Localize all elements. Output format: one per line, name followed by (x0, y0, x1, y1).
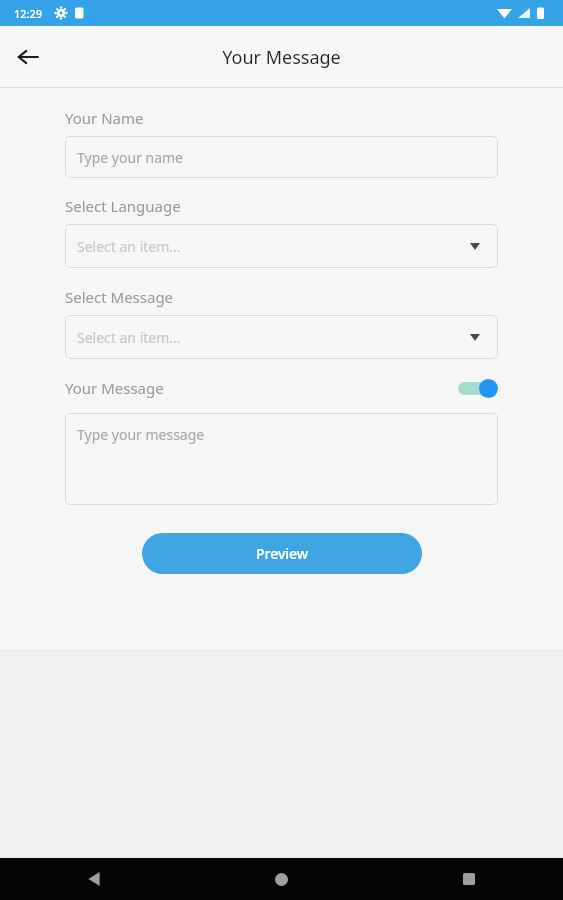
staticText: Type your name (77, 148, 183, 167)
staticText: 12:29 (14, 6, 43, 21)
staticText: Your Name (65, 108, 144, 128)
button[interactable]: Type your name (65, 136, 498, 178)
staticText: Select Language (65, 196, 181, 216)
staticText: Your Message (65, 378, 164, 398)
button[interactable]: Type your message (65, 413, 498, 505)
button[interactable]: Back (0, 858, 187, 900)
button[interactable]: Select an item... (65, 224, 498, 268)
button[interactable]: Recents (375, 858, 563, 900)
button[interactable]: Back (6, 35, 50, 79)
staticText: Preview (256, 544, 309, 563)
staticText: Select an item... (77, 237, 181, 256)
button[interactable]: Your Message toggle (454, 374, 498, 402)
button[interactable]: Select an item... (65, 315, 498, 359)
staticText: Your Message (222, 45, 341, 70)
staticText: Select Message (65, 287, 174, 307)
staticText: Type your message (77, 425, 205, 444)
staticText: Select an item... (77, 328, 181, 347)
button[interactable]: Home (187, 858, 375, 900)
button[interactable]: Preview (142, 533, 422, 574)
